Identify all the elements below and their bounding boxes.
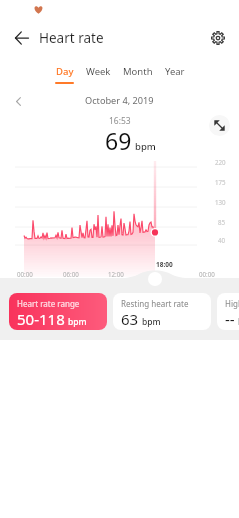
staticText: 18:00 — [156, 260, 173, 269]
staticText: bpm — [68, 316, 87, 328]
staticText: 175 — [215, 178, 226, 186]
staticText: Year — [165, 65, 185, 78]
button[interactable]: Highest heart rate — [217, 293, 239, 330]
button[interactable]: Year — [159, 65, 191, 82]
staticText: bpm — [142, 316, 161, 328]
staticText: 06:00 — [63, 270, 79, 278]
staticText: Heart rate — [39, 29, 104, 47]
button[interactable]: Time scrubber — [148, 272, 162, 286]
button[interactable]: Resting heart rate — [113, 293, 211, 330]
button[interactable]: Month — [117, 65, 159, 82]
button[interactable]: Expand chart — [209, 115, 230, 136]
staticText: 220 — [215, 158, 226, 166]
staticText: 63 — [121, 309, 139, 329]
staticText: 85 — [218, 218, 226, 226]
staticText: -- — [225, 309, 235, 329]
staticText: Heart rate range — [17, 298, 80, 309]
staticText: October 4, 2019 — [85, 94, 154, 107]
button[interactable]: Back — [8, 24, 36, 52]
staticText: 50-118 — [17, 309, 65, 329]
staticText: 16:53 — [109, 115, 131, 127]
button[interactable]: Day — [49, 65, 80, 84]
staticText: Day — [56, 65, 74, 78]
staticText: 130 — [215, 198, 226, 206]
staticText: 12:00 — [108, 270, 124, 278]
button[interactable]: Week — [80, 65, 117, 82]
staticText: 69 — [105, 125, 132, 156]
button[interactable]: Heart rate range — [9, 293, 107, 330]
button[interactable]: Previous day — [8, 92, 28, 110]
staticText: 00:00 — [17, 270, 33, 278]
staticText: Week — [86, 65, 111, 78]
staticText: Highest heart rate — [225, 298, 239, 309]
button[interactable]: Settings — [204, 24, 232, 52]
staticText: bpm — [238, 316, 239, 328]
staticText: bpm — [135, 140, 156, 153]
staticText: Month — [123, 65, 153, 78]
staticText: 00:00 — [199, 270, 215, 278]
staticText: Resting heart rate — [121, 298, 189, 309]
staticText: 40 — [218, 236, 226, 244]
